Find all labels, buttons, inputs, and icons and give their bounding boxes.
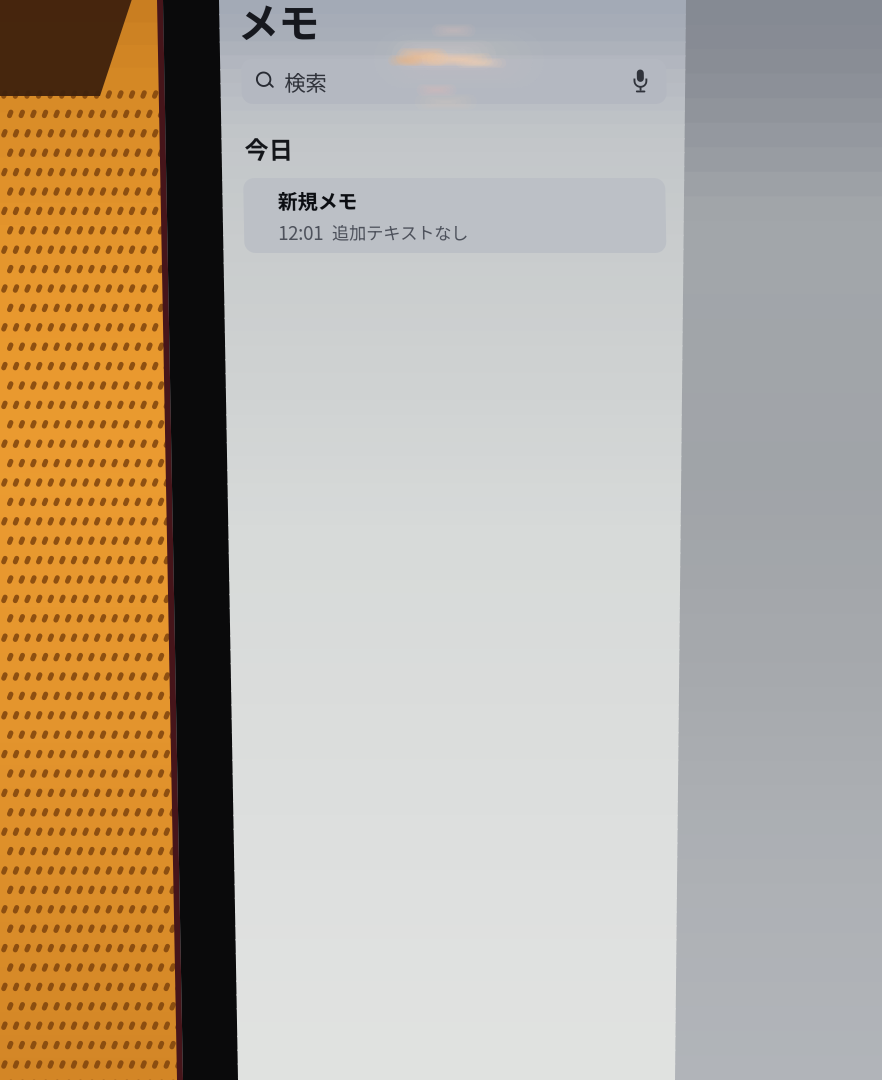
button[interactable]: 検索 [21, 59, 446, 104]
button[interactable]: 新規メモ [21, 178, 443, 253]
staticText: 追加テキストなし [109, 219, 245, 244]
staticText: 検索 [64, 66, 106, 97]
staticText: 新規メモ [55, 185, 135, 214]
staticText: 12:01 [55, 218, 100, 245]
staticText: 今日 [23, 131, 71, 166]
